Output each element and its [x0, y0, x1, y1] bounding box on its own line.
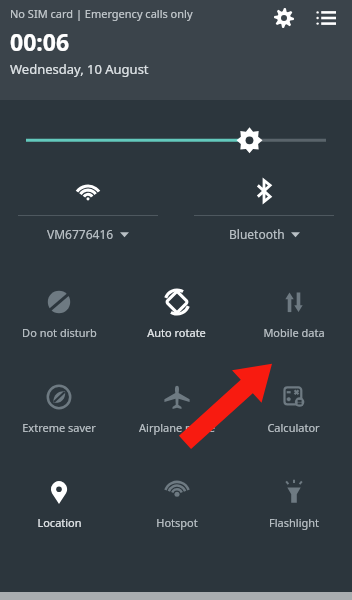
button[interactable]: Settings [268, 2, 300, 34]
staticText: Hotspot [156, 515, 198, 530]
button[interactable]: Do not disturb [0, 272, 118, 367]
staticText: 00:06 [10, 26, 70, 57]
button[interactable]: Auto rotate [118, 272, 235, 367]
staticText: Bluetooth [229, 226, 285, 242]
staticText: VM6776416 [47, 226, 114, 242]
button[interactable]: Brightness [0, 100, 352, 165]
staticText: Extreme saver [22, 420, 96, 435]
button[interactable]: Flashlight [235, 462, 352, 557]
staticText: Location [37, 515, 82, 530]
staticText: Auto rotate [147, 325, 206, 340]
button[interactable]: Calculator [235, 367, 352, 462]
button[interactable]: Mobile data [235, 272, 352, 367]
staticText: Calculator [267, 420, 320, 435]
button[interactable]: Airplane mode [118, 367, 235, 462]
button[interactable]: Location [0, 462, 118, 557]
button[interactable]: Quick settings list [310, 2, 342, 34]
button[interactable]: VM6776416 [0, 165, 176, 260]
staticText: Airplane mode [139, 420, 215, 435]
button[interactable]: Hotspot [118, 462, 235, 557]
staticText: No SIM card | Emergency calls only [10, 6, 193, 21]
staticText: Mobile data [263, 325, 325, 340]
staticText: Do not disturb [22, 325, 97, 340]
staticText: Wednesday, 10 August [10, 60, 149, 78]
staticText: Flashlight [269, 515, 319, 530]
button[interactable]: Extreme saver [0, 367, 118, 462]
button[interactable]: Bluetooth [176, 165, 352, 260]
